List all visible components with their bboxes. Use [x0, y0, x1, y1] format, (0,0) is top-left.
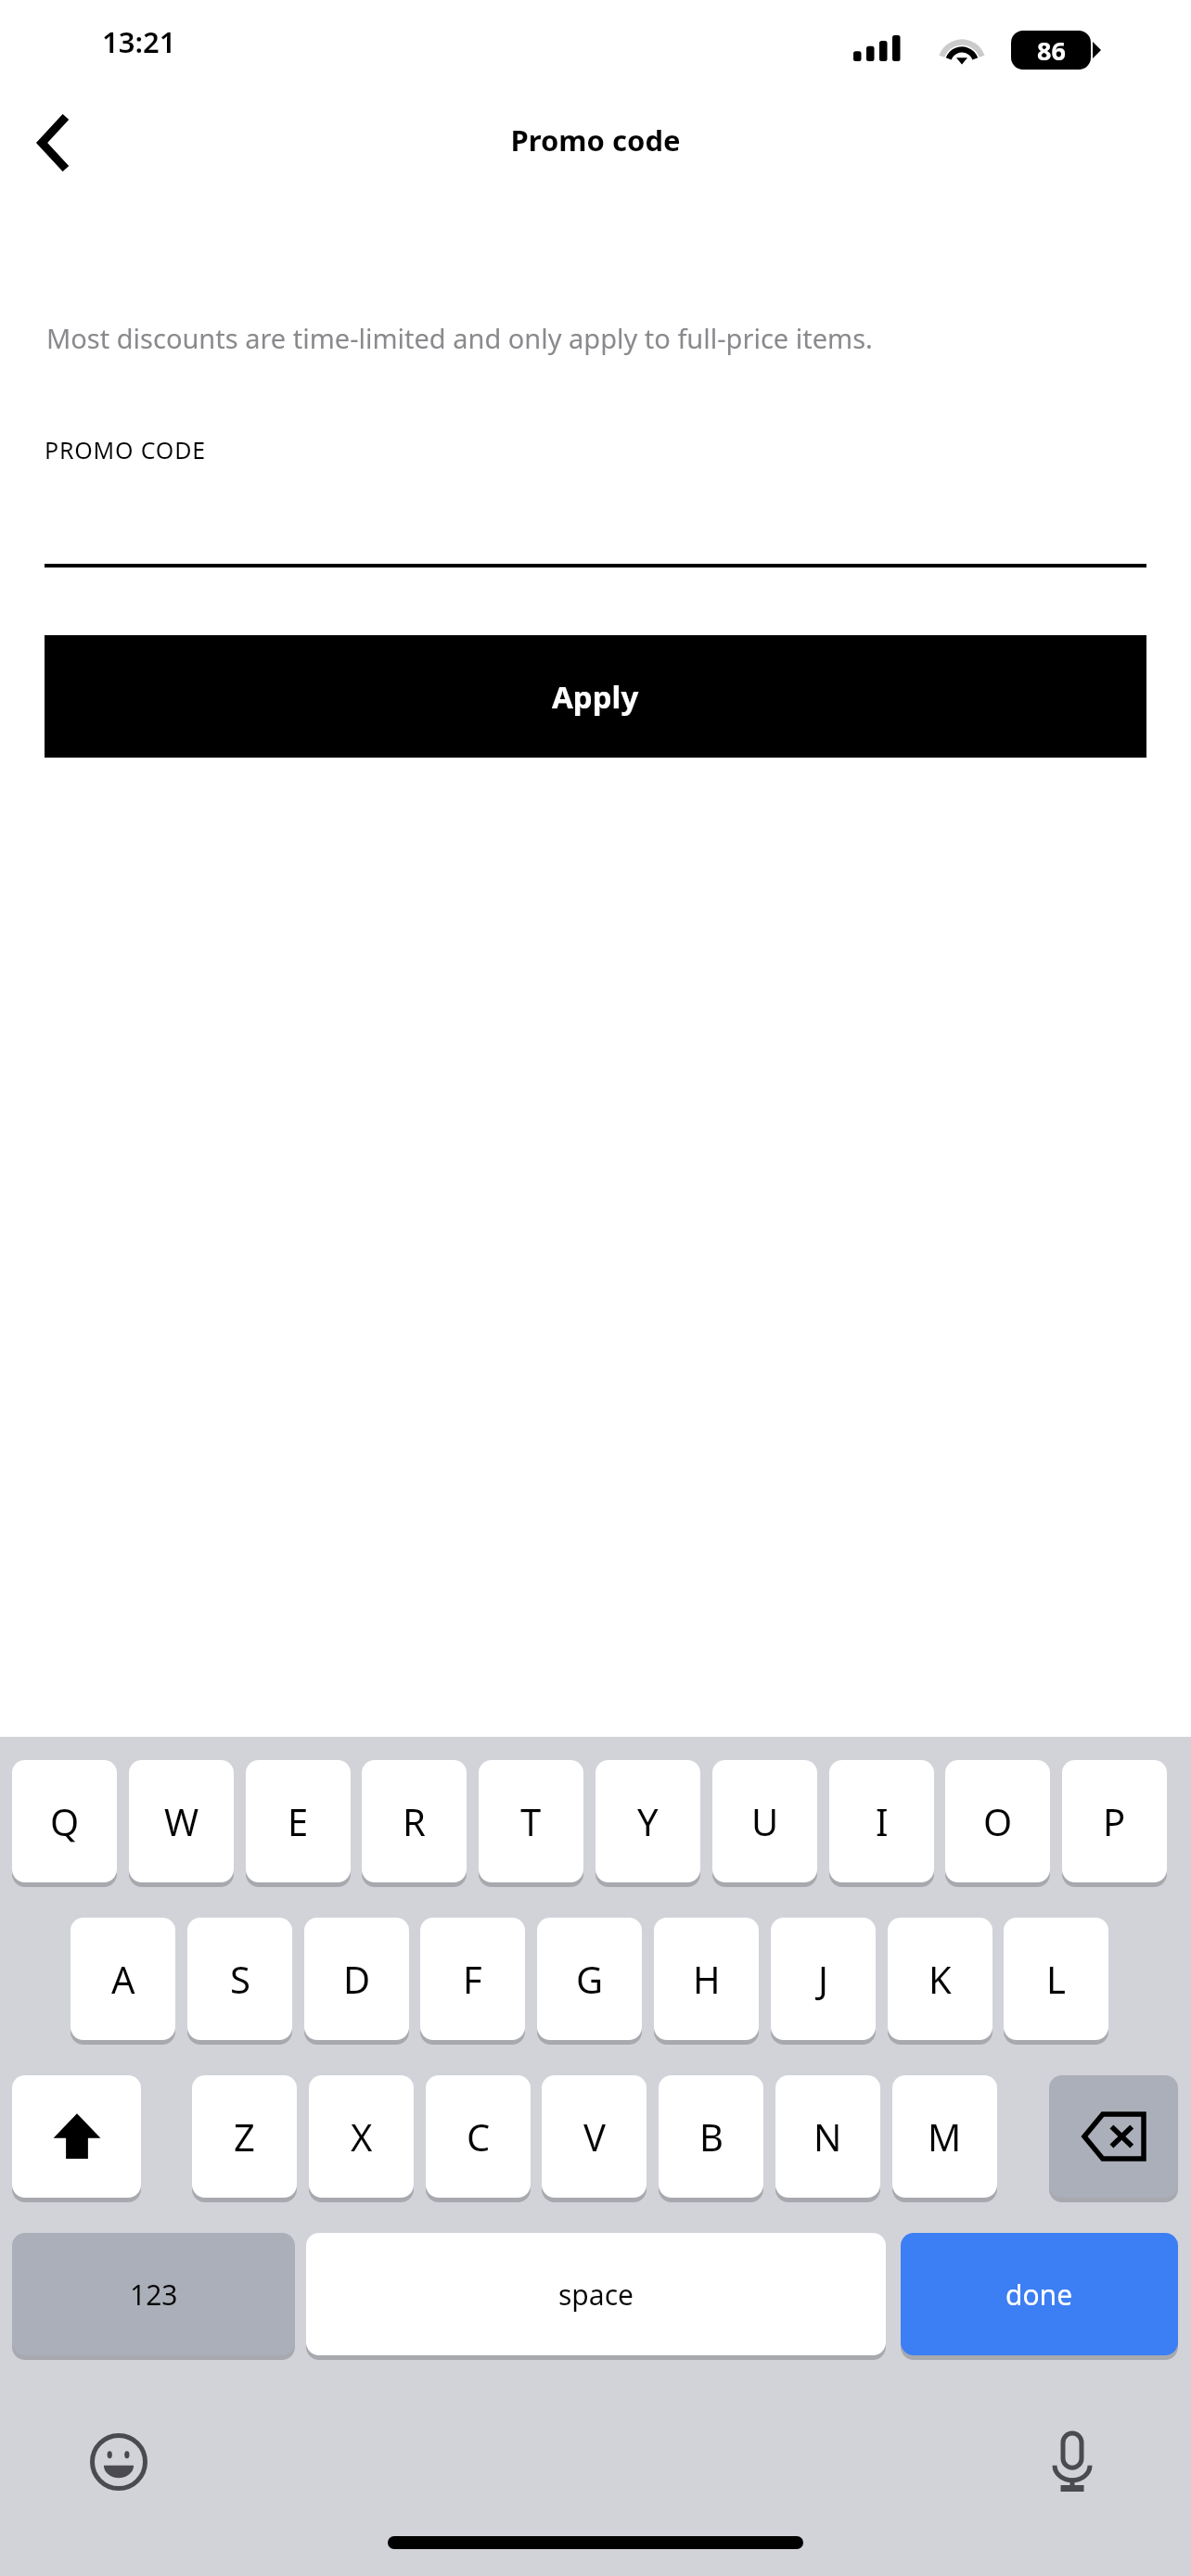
staticText: Apply — [552, 676, 639, 718]
staticText: U — [751, 1796, 779, 1846]
staticText: C — [467, 2111, 491, 2162]
staticText: PROMO CODE — [45, 434, 206, 465]
staticText: P — [1103, 1796, 1126, 1846]
button[interactable]: Z — [192, 2075, 297, 2198]
button[interactable]: H — [654, 1918, 759, 2040]
staticText: H — [693, 1954, 721, 2004]
button[interactable]: X — [309, 2075, 414, 2198]
button[interactable]: J — [771, 1918, 876, 2040]
staticText: 86 — [1037, 33, 1066, 68]
staticText: J — [818, 1954, 828, 2004]
staticText: A — [111, 1954, 135, 2004]
staticText: R — [403, 1796, 426, 1846]
button[interactable]: N — [775, 2075, 880, 2198]
button[interactable]: P — [1062, 1760, 1167, 1882]
button[interactable]: U — [712, 1760, 817, 1882]
staticText: Most discounts are time-limited and only… — [46, 320, 1150, 356]
staticText: L — [1046, 1954, 1066, 2004]
staticText: Z — [234, 2111, 255, 2162]
staticText: G — [576, 1954, 604, 2004]
staticText: S — [230, 1954, 250, 2004]
button[interactable]: O — [945, 1760, 1050, 1882]
staticText: V — [583, 2111, 606, 2162]
button[interactable]: done — [901, 2233, 1178, 2355]
button[interactable]: C — [426, 2075, 531, 2198]
button[interactable]: D — [304, 1918, 409, 2040]
button[interactable]: V — [542, 2075, 647, 2198]
button[interactable] — [45, 491, 1146, 567]
button[interactable]: I — [829, 1760, 934, 1882]
staticText: W — [164, 1796, 199, 1846]
staticText: done — [1005, 2276, 1073, 2314]
staticText: E — [288, 1796, 309, 1846]
staticText: Q — [50, 1796, 80, 1846]
button[interactable]: 123 — [12, 2233, 295, 2355]
button[interactable]: F — [420, 1918, 525, 2040]
staticText: I — [876, 1796, 889, 1846]
button[interactable]: E — [246, 1760, 351, 1882]
button[interactable]: S — [187, 1918, 292, 2040]
staticText: Promo code — [0, 121, 1191, 159]
staticText: O — [983, 1796, 1013, 1846]
staticText: Y — [637, 1796, 659, 1846]
button[interactable]: R — [362, 1760, 467, 1882]
button[interactable]: Back — [13, 102, 95, 184]
button[interactable]: Apply — [45, 635, 1146, 758]
button[interactable]: W — [129, 1760, 234, 1882]
button[interactable]: T — [479, 1760, 583, 1882]
button[interactable]: L — [1004, 1918, 1108, 2040]
staticText: M — [928, 2111, 962, 2162]
button[interactable]: Y — [595, 1760, 700, 1882]
button[interactable]: Emoji keyboard — [78, 2421, 160, 2503]
button[interactable]: B — [659, 2075, 763, 2198]
button[interactable]: Voice input — [1031, 2421, 1113, 2503]
button[interactable] — [12, 2075, 141, 2198]
staticText: 13:21 — [102, 22, 176, 61]
button[interactable]: K — [888, 1918, 992, 2040]
staticText: K — [928, 1954, 952, 2004]
staticText: 123 — [130, 2276, 178, 2314]
staticText: T — [520, 1796, 542, 1846]
button[interactable]: Backspace — [1049, 2075, 1178, 2198]
staticText: B — [699, 2111, 724, 2162]
staticText: F — [463, 1954, 482, 2004]
button[interactable]: Q — [12, 1760, 117, 1882]
button[interactable]: M — [892, 2075, 997, 2198]
staticText: N — [813, 2111, 842, 2162]
button[interactable]: G — [537, 1918, 642, 2040]
staticText: space — [558, 2276, 634, 2314]
staticText: D — [343, 1954, 371, 2004]
button[interactable]: space — [306, 2233, 886, 2355]
button[interactable]: A — [70, 1918, 175, 2040]
staticText: X — [351, 2111, 373, 2162]
